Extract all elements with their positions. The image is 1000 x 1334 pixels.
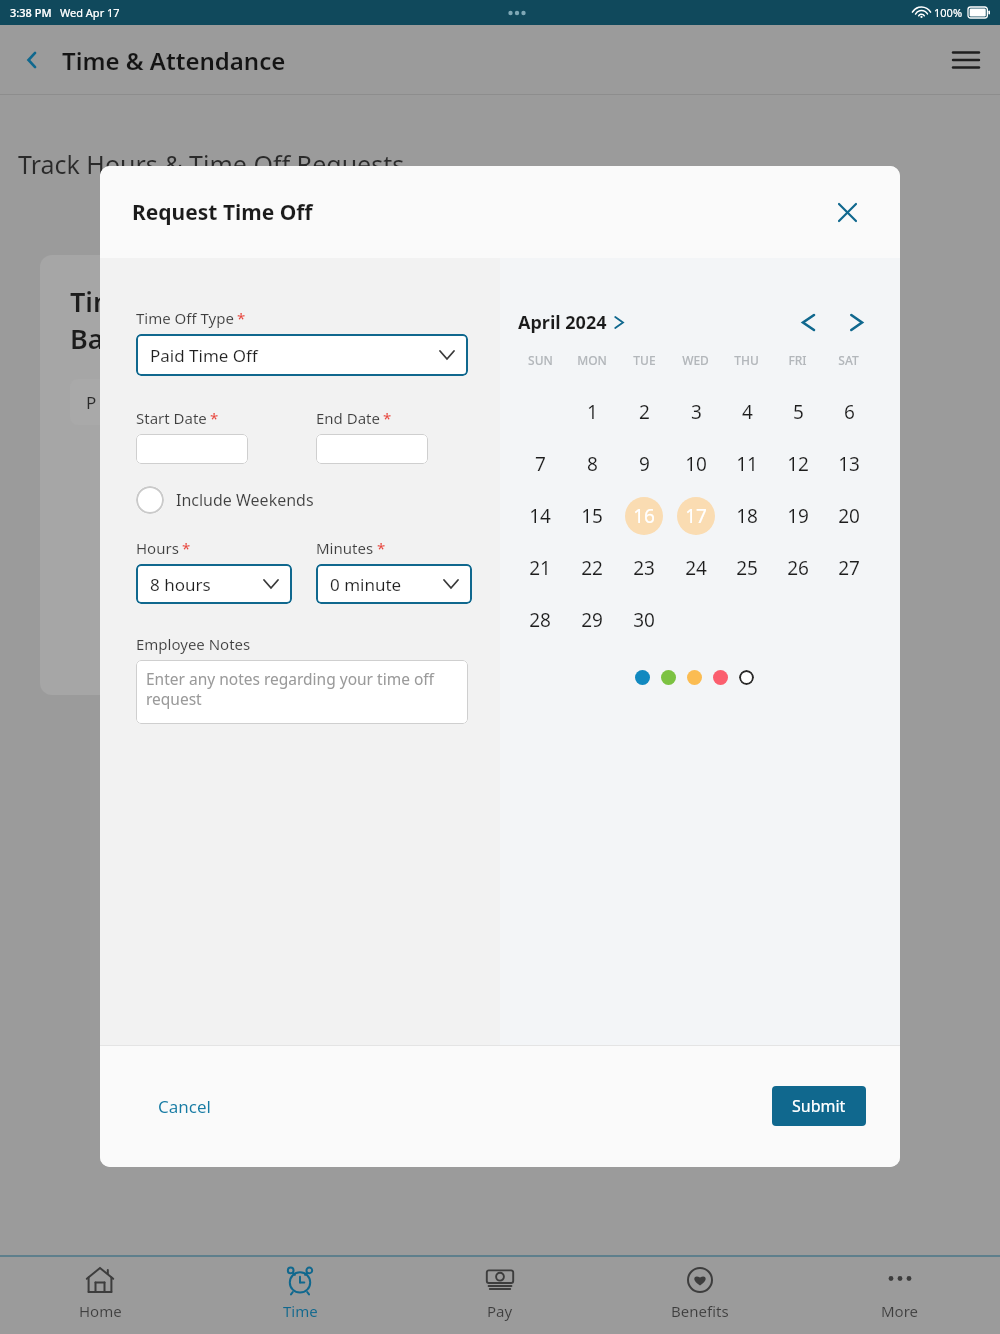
staticText: Paid Time Off — [150, 344, 258, 367]
staticText: 24 — [685, 555, 707, 581]
button[interactable]: 7 — [521, 445, 559, 483]
button[interactable]: 4 — [728, 393, 766, 431]
staticText: Track Hours & Time Off Requests — [18, 147, 405, 181]
staticText: 15 — [581, 503, 603, 529]
staticText: SUN — [528, 352, 553, 368]
staticText: 10 — [685, 451, 707, 477]
staticText: * — [210, 408, 219, 428]
staticText: 29 — [581, 607, 603, 633]
button[interactable]: April 2024 — [514, 307, 627, 338]
staticText: 20 — [838, 503, 860, 529]
staticText: 1 — [587, 399, 598, 425]
button[interactable]: Previous month — [790, 304, 826, 340]
staticText: 16 — [633, 503, 655, 529]
button[interactable]: Enter any notes regarding your time off … — [136, 660, 468, 724]
staticText: 23 — [633, 555, 655, 581]
button[interactable]: 12 — [779, 445, 817, 483]
button[interactable]: Cancel — [140, 1085, 229, 1128]
staticText: Time Off — [70, 283, 183, 320]
staticText: 7 — [535, 451, 546, 477]
button[interactable]: 20 — [830, 497, 868, 535]
button[interactable]: 11 — [728, 445, 766, 483]
button[interactable]: Submit — [772, 1086, 866, 1126]
staticText: Hours — [136, 538, 179, 558]
button[interactable]: 17 — [677, 497, 715, 535]
button[interactable]: 10 — [677, 445, 715, 483]
staticText: WED — [682, 352, 709, 368]
staticText: 18 — [736, 503, 758, 529]
staticText: 12 — [787, 451, 809, 477]
button[interactable]: 3 — [677, 393, 715, 431]
button[interactable] — [316, 434, 428, 464]
button[interactable]: 1 — [573, 393, 611, 431]
button[interactable]: 5 — [779, 393, 817, 431]
button[interactable]: 16 — [625, 497, 663, 535]
staticText: 27 — [838, 555, 860, 581]
staticText: P — [86, 391, 97, 414]
button[interactable]: 22 — [573, 549, 611, 587]
staticText: 19 — [787, 503, 809, 529]
button[interactable]: 15 — [573, 497, 611, 535]
staticText: 22 — [581, 555, 603, 581]
staticText: Pay — [487, 1301, 513, 1321]
button[interactable]: Pay — [400, 1263, 600, 1334]
button[interactable]: Back — [14, 42, 50, 78]
button[interactable]: Time — [200, 1263, 400, 1334]
staticText: * — [237, 308, 246, 328]
staticText: Benefits — [671, 1301, 729, 1321]
button[interactable]: Benefits — [600, 1263, 800, 1334]
staticText: THU — [734, 352, 759, 368]
button[interactable]: 25 — [728, 549, 766, 587]
button[interactable]: Menu — [946, 40, 986, 80]
staticText: Time & Attendance — [62, 44, 286, 77]
button[interactable]: Home — [0, 1263, 200, 1334]
staticText: * — [182, 538, 191, 558]
button[interactable]: P — [70, 379, 220, 425]
staticText: Balances — [70, 320, 187, 357]
button[interactable]: 19 — [779, 497, 817, 535]
staticText: 14 — [529, 503, 551, 529]
button[interactable]: 23 — [625, 549, 663, 587]
staticText: End Date — [316, 408, 380, 428]
staticText: 11 — [736, 451, 758, 477]
staticText: Time — [283, 1301, 318, 1321]
button[interactable]: 13 — [830, 445, 868, 483]
button[interactable]: 27 — [830, 549, 868, 587]
staticText: * — [383, 408, 392, 428]
button[interactable]: 8 hours — [136, 564, 292, 604]
button[interactable]: 21 — [521, 549, 559, 587]
button[interactable]: More — [800, 1263, 1000, 1334]
button[interactable]: 30 — [625, 601, 663, 639]
button[interactable]: 0 minute — [316, 564, 472, 604]
button[interactable]: 18 — [728, 497, 766, 535]
staticText: Start Date — [136, 408, 207, 428]
staticText: 0 minute — [330, 573, 402, 596]
button[interactable]: 24 — [677, 549, 715, 587]
button[interactable]: 14 — [521, 497, 559, 535]
staticText: Time Off Type — [136, 308, 234, 328]
staticText: 25 — [736, 555, 758, 581]
staticText: 5 — [793, 399, 804, 425]
staticText: Request Time Off — [132, 198, 313, 227]
button[interactable]: 6 — [830, 393, 868, 431]
button[interactable]: Include Weekends — [136, 486, 314, 514]
button[interactable]: 2 — [625, 393, 663, 431]
button[interactable]: 8 — [573, 445, 611, 483]
button[interactable]: 26 — [779, 549, 817, 587]
staticText: Home — [79, 1301, 122, 1321]
button[interactable]: Paid Time Off — [136, 334, 468, 376]
staticText: 17 — [685, 503, 707, 529]
button[interactable]: Next month — [838, 304, 874, 340]
button[interactable]: 29 — [573, 601, 611, 639]
staticText: 6 — [844, 399, 855, 425]
staticText: More — [881, 1301, 919, 1321]
staticText: Include Weekends — [176, 489, 314, 511]
staticText: 4 — [742, 399, 753, 425]
staticText: 2 — [639, 399, 650, 425]
button[interactable]: 28 — [521, 601, 559, 639]
button[interactable]: Close — [830, 195, 864, 229]
staticText: 30 — [633, 607, 655, 633]
staticText: 100% — [934, 5, 963, 20]
button[interactable]: 9 — [625, 445, 663, 483]
button[interactable] — [136, 434, 248, 464]
